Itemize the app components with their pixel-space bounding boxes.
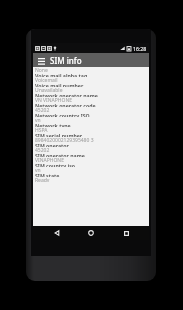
staticText: Network country ISO [35, 112, 90, 117]
staticText: vn [35, 117, 41, 122]
staticText: None [35, 67, 48, 72]
button[interactable]: Home [80, 226, 102, 240]
button[interactable]: SIM serial number [35, 132, 147, 142]
staticText: 45202 [35, 147, 50, 152]
staticText: Network operator code [35, 102, 96, 107]
staticText: 45202 [35, 107, 50, 112]
staticText: VN VINAPHONE [35, 97, 73, 102]
button[interactable]: Open navigation drawer [36, 55, 47, 66]
staticText: SIM info [50, 55, 82, 66]
button[interactable]: Back [46, 226, 68, 240]
button[interactable]: SIM operator [35, 142, 147, 152]
button[interactable]: Network operator code [35, 102, 147, 112]
staticText: SIM operator [35, 142, 69, 147]
staticText: 16:28 [133, 45, 147, 52]
button[interactable]: None [35, 67, 147, 72]
button[interactable]: SIM state [35, 172, 147, 182]
staticText: HSPA [35, 127, 48, 132]
staticText: Voicemail [35, 77, 58, 82]
button[interactable]: Voice mail alpha tag [35, 72, 147, 82]
button[interactable]: SIM operator name [35, 152, 147, 162]
staticText: vn [35, 167, 41, 172]
staticText: SIM state [35, 172, 60, 177]
staticText: Network operator name [35, 92, 98, 97]
button[interactable]: Voice mail number [35, 82, 147, 92]
button[interactable]: SIM country iso [35, 162, 147, 172]
staticText: SIM operator name [35, 152, 85, 157]
staticText: SIM serial number [35, 132, 83, 137]
staticText: Unavailable [35, 87, 63, 92]
staticText: 8984020002129395480 3 [35, 137, 94, 142]
button[interactable]: Recent apps [115, 226, 137, 240]
button[interactable]: Network type [35, 122, 147, 132]
button[interactable]: Network operator name [35, 92, 147, 102]
staticText: Voice mail alpha tag [35, 72, 88, 77]
staticText: Ready [35, 177, 50, 182]
staticText: VINAPHONE [35, 157, 64, 162]
button[interactable]: Network country ISO [35, 112, 147, 122]
staticText: Voice mail number [35, 82, 84, 87]
staticText: Network type [35, 122, 71, 127]
staticText: SIM country iso [35, 162, 76, 167]
